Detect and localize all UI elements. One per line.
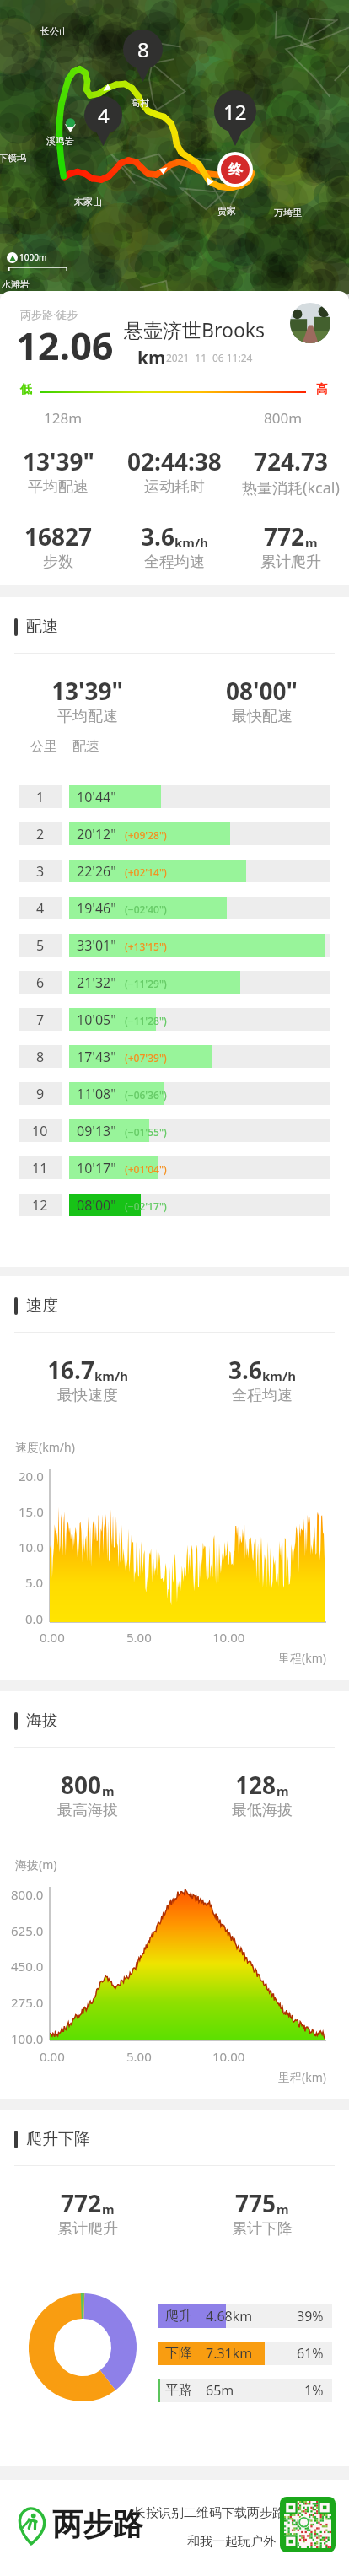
staticText: km/h [174, 534, 208, 551]
button[interactable]: 2 [19, 822, 330, 845]
staticText: km/h [262, 1367, 296, 1384]
staticText: 17'43" [77, 1048, 116, 1066]
staticText: 775 [235, 2187, 277, 2219]
staticText: 长公山 [40, 25, 68, 37]
staticText: 东家山 [74, 196, 102, 207]
button[interactable]: 爬升 [158, 2304, 332, 2328]
staticText: 5.00 [126, 2048, 152, 2065]
staticText: m [277, 1782, 289, 1799]
button[interactable]: 11 [19, 1156, 330, 1179]
button[interactable]: QR code [284, 2501, 331, 2548]
staticText: (−06'36") [125, 1088, 167, 1102]
staticText: 爬升 [165, 2308, 192, 2325]
staticText: 7.31km [206, 2344, 253, 2363]
staticText: 128m [44, 408, 83, 428]
staticText: (+13'15") [125, 940, 167, 953]
staticText: 里程(km) [278, 2069, 326, 2085]
staticText: 128 [235, 1769, 277, 1801]
staticText: 里程(km) [278, 1650, 326, 1666]
staticText: 海拔 [26, 1711, 58, 1731]
staticText: (−02'40") [125, 903, 167, 916]
staticText: 最低海拔 [232, 1801, 293, 1820]
staticText: 8 [36, 1048, 45, 1066]
staticText: 最高海拔 [57, 1801, 118, 1820]
staticText: 和我一起玩户外 [187, 2534, 276, 2550]
button[interactable]: 1 [19, 785, 330, 808]
staticText: 最快速度 [57, 1386, 118, 1405]
staticText: 15.0 [19, 1503, 44, 1520]
staticText: 625.0 [11, 1922, 44, 1939]
button[interactable]: 10 [19, 1119, 330, 1142]
staticText: 10.00 [212, 2048, 245, 2065]
staticText: 低 [20, 382, 32, 397]
button[interactable]: 12 [19, 1194, 330, 1216]
staticText: 长按识别二维码下载两步路 [133, 2505, 285, 2521]
staticText: 高 [316, 382, 328, 397]
staticText: 2 [36, 825, 45, 843]
staticText: (−11'28") [125, 1014, 167, 1027]
button[interactable]: 平路 [158, 2379, 332, 2402]
staticText: 4 [98, 101, 110, 129]
staticText: 8 [137, 35, 149, 63]
staticText: 16.7 [47, 1354, 94, 1386]
staticText: 配速 [72, 738, 99, 755]
staticText: 11'08" [77, 1085, 116, 1103]
staticText: 全程均速 [144, 552, 205, 572]
staticText: 两步路·徒步 [20, 307, 78, 322]
staticText: 100.0 [11, 2030, 44, 2047]
staticText: 10'44" [77, 788, 116, 806]
button[interactable]: 7 [19, 1008, 330, 1031]
staticText: 10.00 [212, 1629, 245, 1646]
staticText: 0.0 [25, 1610, 44, 1627]
button[interactable]: 3 [19, 860, 330, 882]
staticText: 两步路 [52, 2505, 143, 2543]
staticText: 9 [36, 1085, 45, 1103]
staticText: 7 [36, 1010, 45, 1029]
staticText: 11 [32, 1159, 48, 1178]
staticText: 13'39" [51, 675, 123, 707]
staticText: 0.00 [40, 2048, 65, 2065]
staticText: m [102, 1782, 115, 1799]
staticText: (+01'04") [125, 1162, 167, 1176]
staticText: 下降 [165, 2345, 192, 2362]
staticText: (+09'28") [125, 828, 167, 842]
staticText: 累计爬升 [57, 2219, 118, 2239]
staticText: 39% [297, 2307, 324, 2325]
staticText: 速度 [26, 1296, 58, 1316]
staticText: 450.0 [11, 1958, 44, 1975]
staticText: 08'00" [226, 675, 298, 707]
staticText: 1% [304, 2381, 324, 2400]
staticText: 步数 [43, 552, 73, 572]
staticText: m [102, 2201, 115, 2218]
staticText: 热量消耗(kcal) [242, 477, 340, 498]
staticText: 21'32" [77, 973, 116, 992]
staticText: 配速 [26, 617, 58, 637]
staticText: 爬升下降 [26, 2129, 90, 2149]
staticText: 800.0 [11, 1886, 44, 1903]
staticText: 全程均速 [232, 1386, 293, 1405]
staticText: 终 [228, 161, 243, 179]
staticText: (−01'55") [125, 1125, 167, 1139]
button[interactable]: 4 [19, 897, 330, 919]
staticText: 800m [264, 408, 303, 428]
staticText: 3.6 [228, 1354, 262, 1386]
staticText: 速度(km/h) [15, 1439, 75, 1455]
staticText: 0.00 [40, 1629, 65, 1646]
staticText: 10 [32, 1122, 48, 1140]
button[interactable]: User avatar [290, 303, 330, 343]
staticText: 19'46" [77, 899, 116, 918]
staticText: 5.0 [25, 1574, 44, 1591]
staticText: m [305, 534, 318, 551]
staticText: 5 [36, 936, 45, 955]
staticText: 22'26" [77, 862, 116, 881]
button[interactable]: 9 [19, 1082, 330, 1105]
button[interactable]: 下降 [158, 2342, 332, 2365]
button[interactable]: 6 [19, 971, 330, 994]
button[interactable]: 8 [19, 1045, 330, 1068]
staticText: 772 [264, 520, 305, 552]
staticText: 运动耗时 [144, 477, 205, 497]
staticText: 20'12" [77, 825, 116, 843]
button[interactable]: 5 [19, 934, 330, 957]
staticText: 12 [223, 98, 247, 126]
staticText: 10'05" [77, 1010, 116, 1029]
